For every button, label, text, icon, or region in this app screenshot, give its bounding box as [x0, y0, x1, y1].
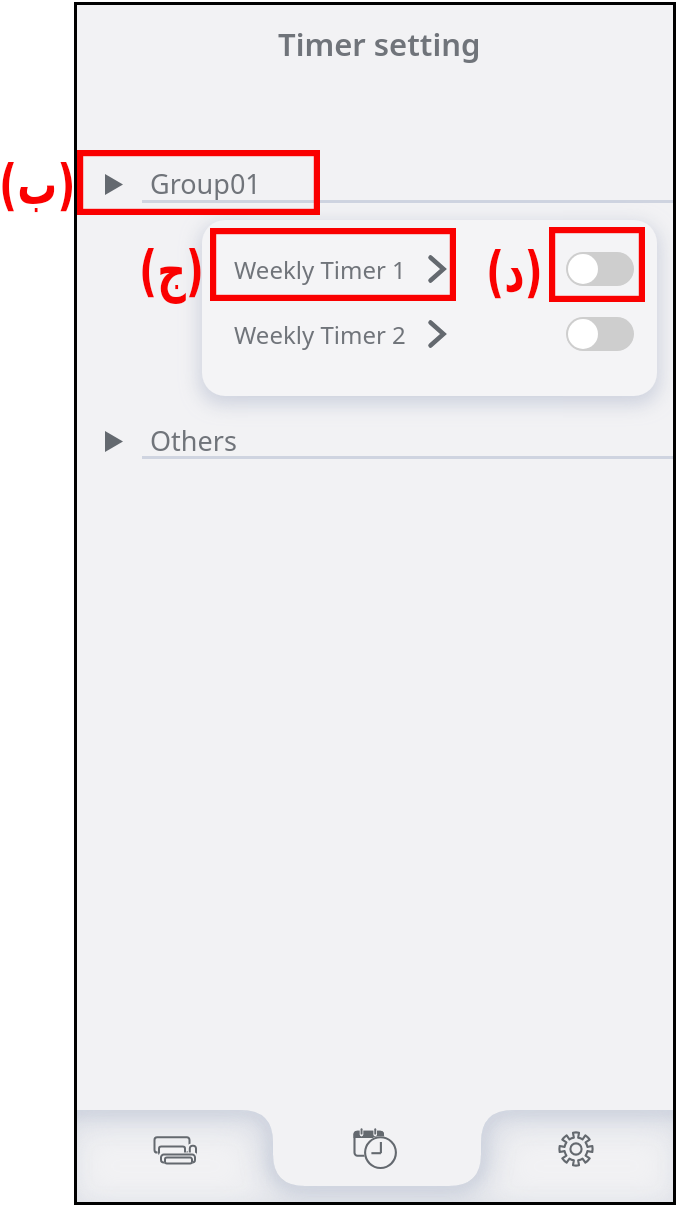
button[interactable]: Enable Weekly Timer 2	[566, 317, 634, 351]
button[interactable]: Others	[77, 419, 673, 459]
staticText: (د)	[486, 239, 543, 304]
button[interactable]: Enable Weekly Timer 1	[566, 252, 634, 286]
button[interactable]: Timer	[273, 1072, 481, 1202]
button[interactable]: Group01	[77, 162, 673, 203]
staticText: Weekly Timer 1	[234, 253, 406, 286]
button[interactable]: Weekly Timer 2	[202, 302, 657, 366]
other: annotation highlight	[549, 227, 645, 302]
staticText: (ج)	[139, 238, 204, 303]
button[interactable]: Weekly Timer 1	[202, 237, 657, 301]
staticText: Others	[150, 422, 237, 459]
staticText: (ب)	[0, 152, 76, 217]
button[interactable]: Print	[77, 1072, 273, 1202]
staticText: Group01	[150, 165, 261, 202]
staticText: Weekly Timer 2	[234, 318, 406, 351]
other: annotation highlight	[77, 150, 320, 215]
staticText: Timer setting	[278, 23, 481, 65]
other: annotation highlight	[210, 228, 456, 301]
button[interactable]: Settings	[481, 1072, 673, 1202]
